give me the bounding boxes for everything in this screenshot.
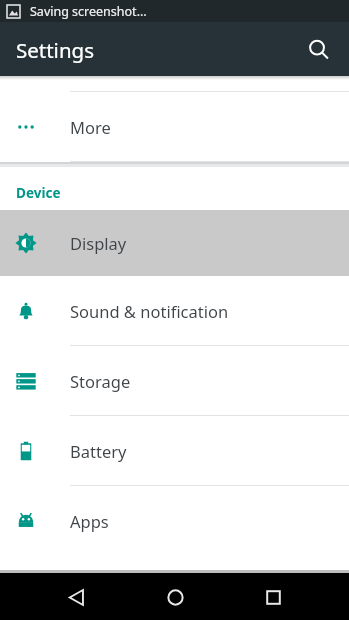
button[interactable]: Apps [0, 486, 349, 556]
button[interactable]: Storage [0, 346, 349, 416]
button[interactable]: Battery [0, 416, 349, 486]
staticText: Settings [16, 36, 95, 64]
button[interactable]: Sound & notification [0, 276, 349, 346]
button[interactable]: Back [53, 574, 99, 620]
button[interactable]: More [0, 92, 349, 162]
staticText: Battery [70, 440, 127, 462]
staticText: More [70, 116, 111, 138]
staticText: Device [16, 184, 61, 202]
staticText: Display [70, 232, 127, 254]
button[interactable]: Recent apps [250, 574, 296, 620]
staticText: Apps [70, 510, 109, 532]
staticText: Storage [70, 370, 131, 392]
button[interactable]: Home [152, 574, 198, 620]
staticText: Sound & notification [70, 300, 229, 322]
button[interactable]: Search [295, 26, 341, 72]
staticText: Saving screenshot… [30, 3, 147, 20]
button[interactable]: Display [0, 210, 349, 276]
